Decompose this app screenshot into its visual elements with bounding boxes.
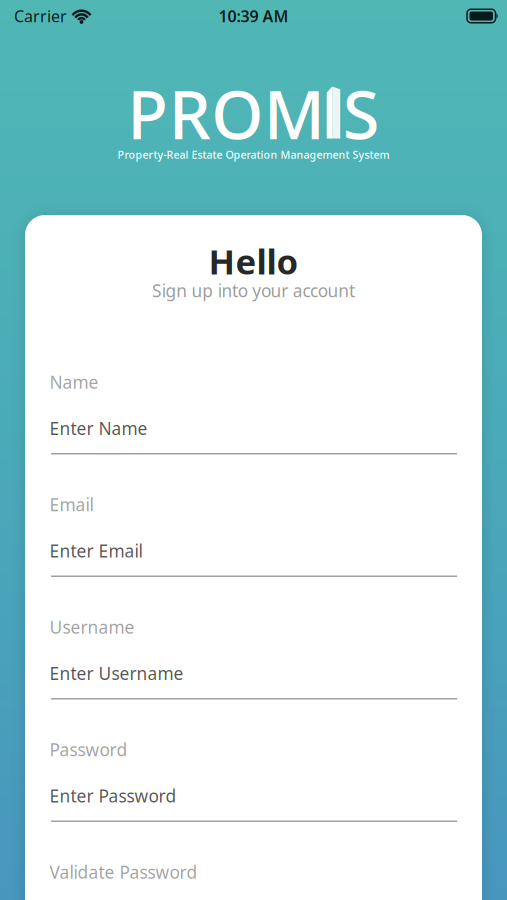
button[interactable]: Enter Name [51,417,457,454]
staticText: Username [49,615,134,638]
staticText: Name [49,370,98,393]
staticText: Enter Password [49,784,176,807]
staticText: Sign up into your account [152,279,355,302]
staticText: Carrier [14,5,67,27]
staticText: Property-Real Estate Operation Managemen… [117,147,389,162]
button[interactable]: Enter Password [51,784,457,822]
staticText: Password [49,738,127,761]
staticText: PROM [127,69,325,157]
button[interactable]: Enter Username [51,662,457,699]
button[interactable]: Enter Email [51,539,457,577]
staticText: Email [49,493,93,516]
staticText: Hello [208,238,298,284]
staticText: Enter Email [49,539,142,562]
staticText: Validate Password [49,860,197,883]
staticText: Enter Name [49,417,147,440]
staticText: Enter Username [49,662,183,685]
staticText: 10:39 AM [218,5,288,27]
staticText: S [343,69,380,157]
